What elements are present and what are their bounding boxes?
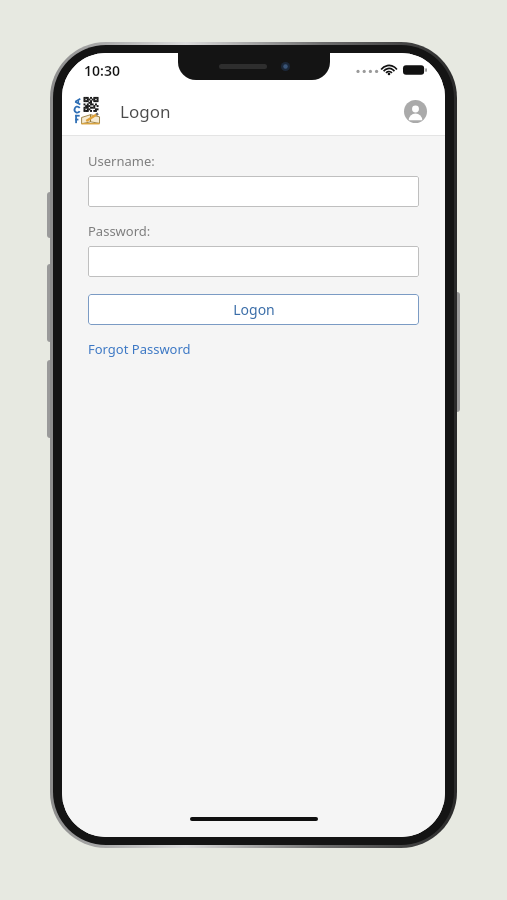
staticText: 10:30 (84, 61, 120, 80)
button[interactable]: Forgot Password (88, 339, 191, 359)
staticText: Logon (233, 300, 275, 319)
button[interactable]: Text input (88, 176, 419, 207)
staticText: Username: (88, 152, 155, 170)
staticText: Password: (88, 222, 151, 240)
button[interactable]: FCA logo (72, 95, 104, 127)
staticText: Forgot Password (88, 340, 191, 358)
button[interactable]: Account (393, 89, 437, 133)
button[interactable]: Logon (88, 294, 419, 325)
staticText: Logon (120, 100, 171, 123)
button[interactable]: Text input (88, 246, 419, 277)
